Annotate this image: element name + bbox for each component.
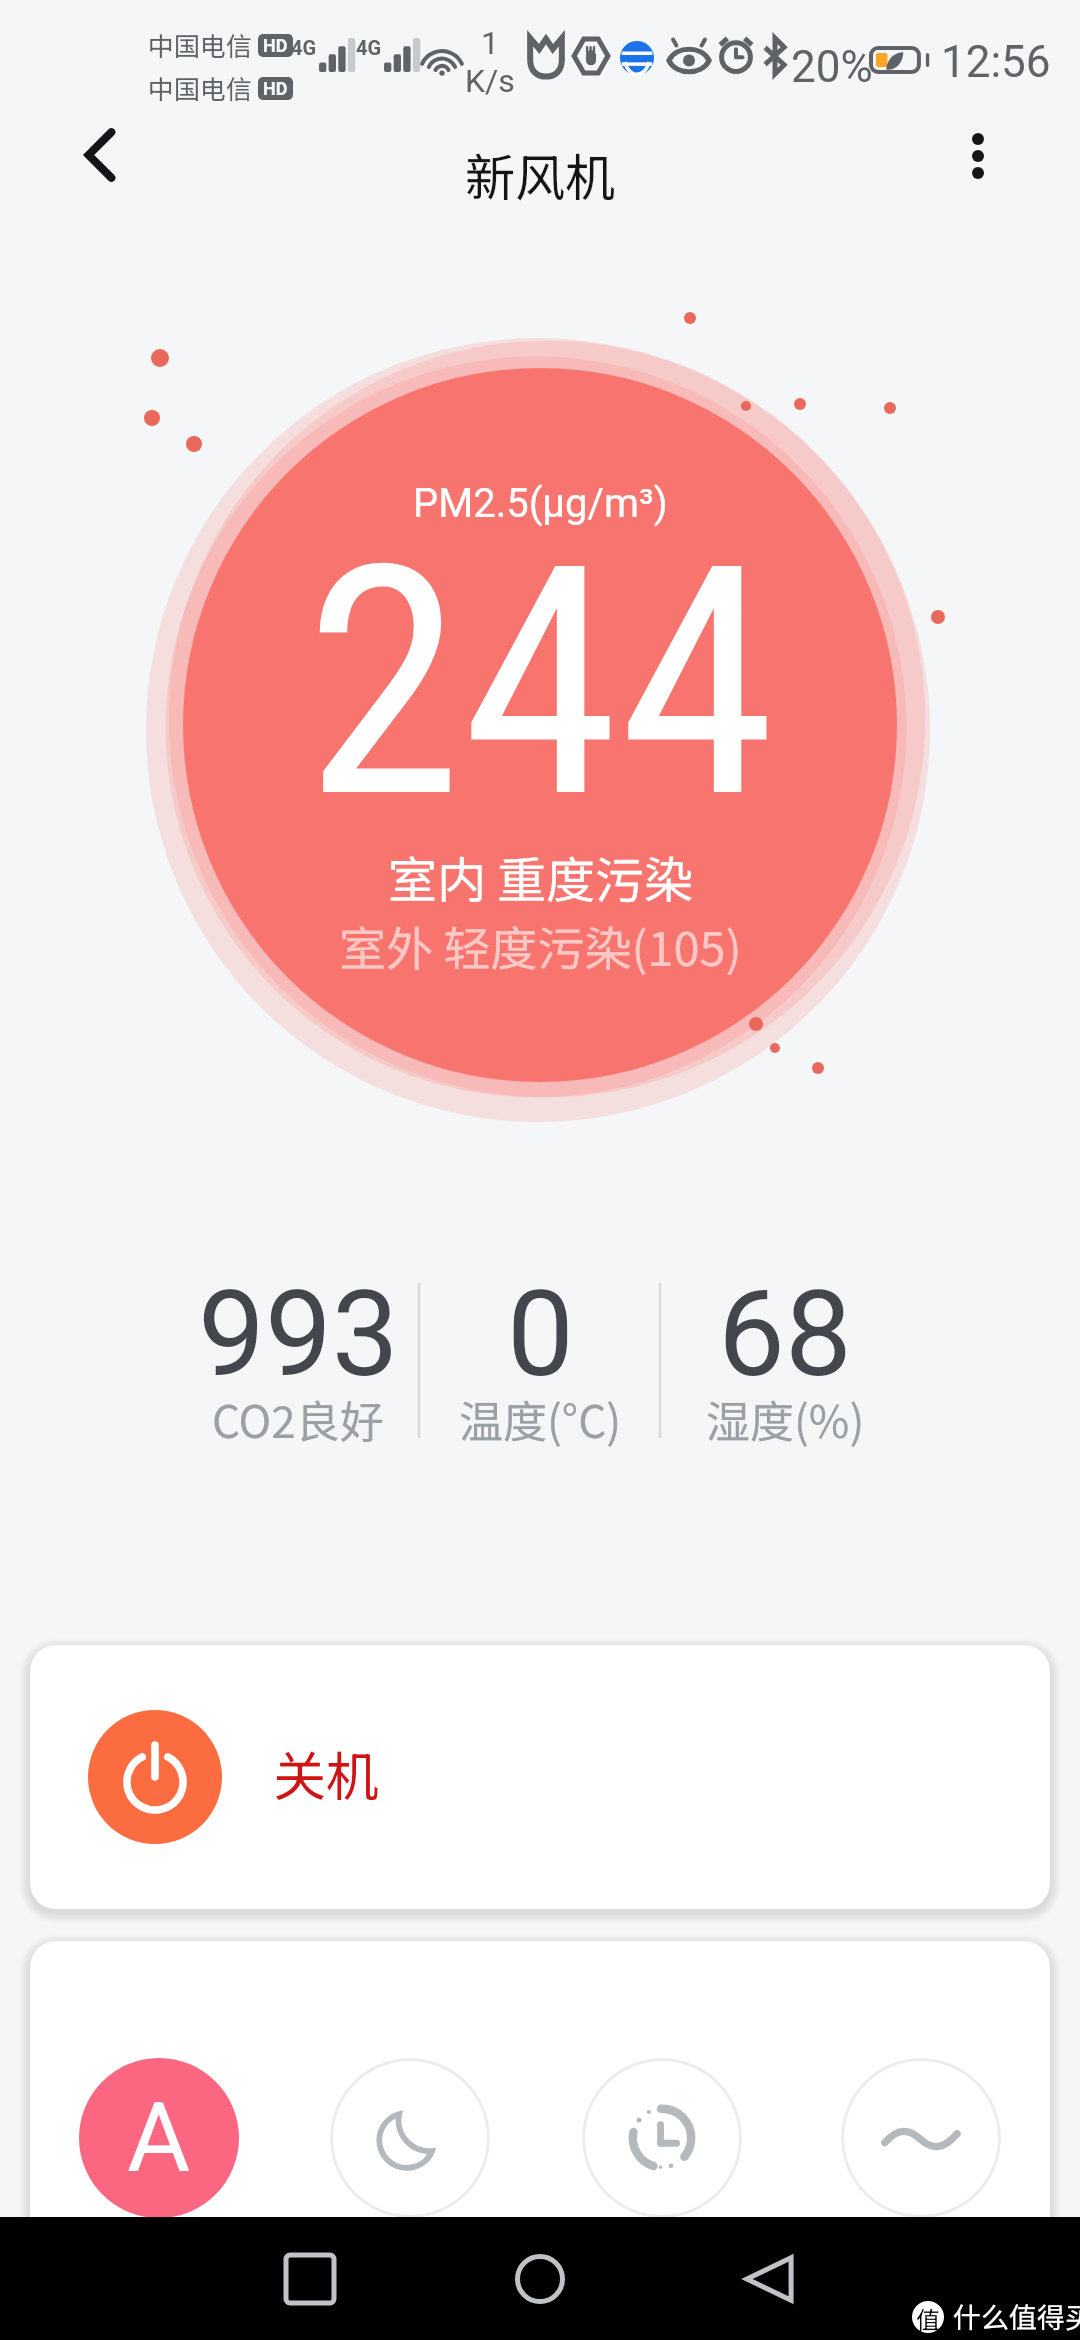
button[interactable]: More options — [934, 112, 1022, 200]
button[interactable]: Wind speed — [841, 2058, 1001, 2218]
button[interactable]: Recents — [265, 2234, 355, 2324]
staticText: 中国电信 — [148, 69, 253, 107]
staticText: 4G — [356, 36, 382, 59]
button[interactable]: A — [79, 2058, 239, 2218]
staticText: 993 — [198, 1265, 399, 1404]
staticText: HD — [263, 35, 288, 56]
button[interactable]: Back — [56, 111, 144, 199]
button[interactable]: Sleep mode — [330, 2058, 490, 2218]
staticText: CO2良好 — [212, 1387, 384, 1451]
staticText: 室外 轻度污染(105) — [339, 911, 742, 979]
button[interactable]: Timer — [582, 2058, 742, 2218]
staticText: 室内 重度污染 — [388, 841, 693, 912]
staticText: 温度(°C) — [459, 1387, 622, 1451]
button[interactable]: Back — [724, 2234, 814, 2324]
staticText: PM2.5(μg/m³) — [413, 480, 668, 527]
staticText: 68 — [718, 1265, 852, 1404]
staticText: 湿度(%) — [706, 1387, 865, 1451]
staticText: HD — [263, 78, 288, 99]
staticText: 12:56 — [941, 36, 1051, 88]
staticText: 244 — [305, 497, 776, 870]
staticText: 中国电信 — [148, 26, 253, 64]
staticText: 0 — [507, 1265, 574, 1404]
staticText: 什么值得买 — [953, 2296, 1080, 2337]
staticText: A — [127, 2081, 191, 2195]
staticText: 1 — [481, 24, 499, 62]
staticText: 新风机 — [0, 138, 1080, 210]
button[interactable]: 关机 — [30, 1645, 1050, 1909]
staticText: 值 — [916, 2301, 940, 2333]
staticText: 20% — [791, 41, 873, 93]
staticText: K/s — [465, 62, 515, 100]
button[interactable]: Home — [495, 2234, 585, 2324]
staticText: 关机 — [273, 1735, 379, 1812]
staticText: 4G — [291, 36, 317, 59]
